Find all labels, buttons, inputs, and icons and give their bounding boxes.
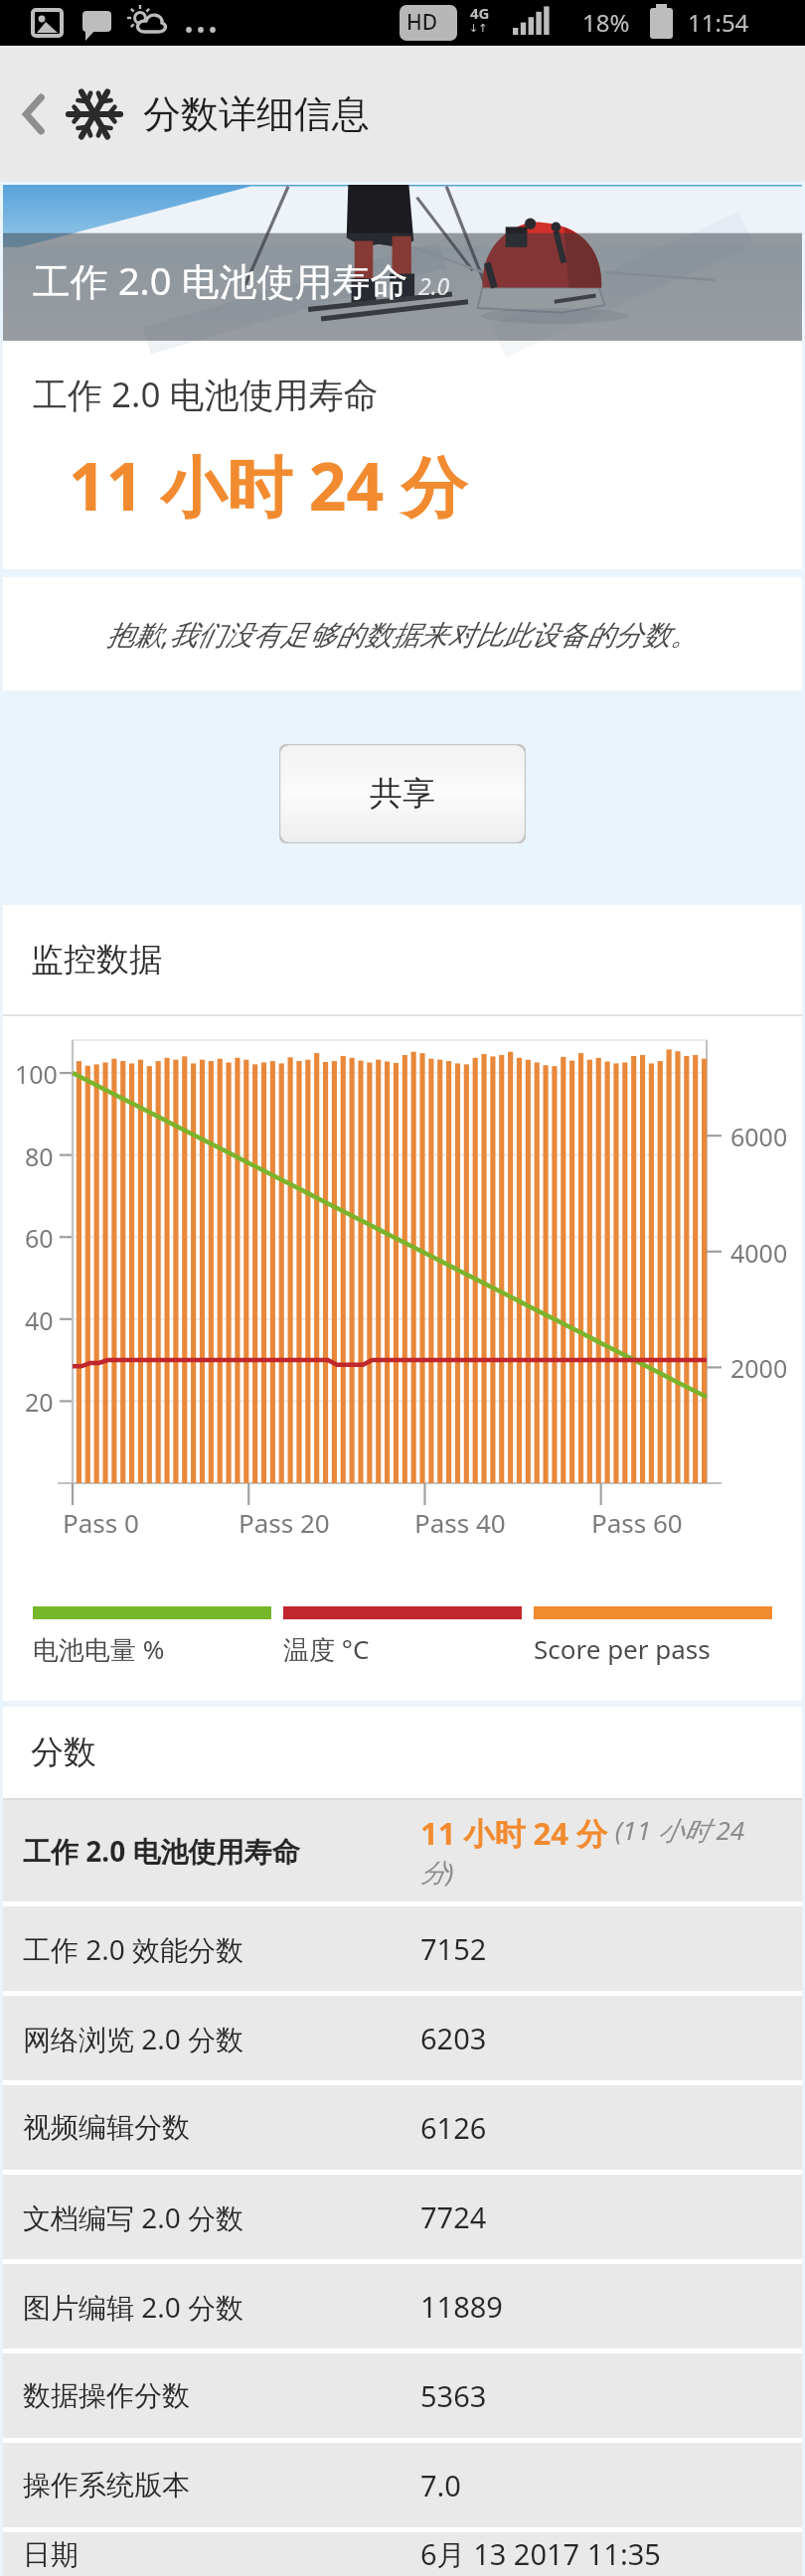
staticText: 共享 xyxy=(370,773,435,815)
staticText: 11 小时 24 分 xyxy=(69,440,467,530)
staticText: 6月 13 2017 11:35 xyxy=(420,2534,661,2574)
staticText: 11:54 xyxy=(688,6,749,39)
button[interactable]: 视频编辑分数 xyxy=(3,2085,802,2170)
staticText: 工作 2.0 电池使用寿命 xyxy=(23,1832,420,1870)
staticText: 工作 2.0 电池使用寿命 xyxy=(33,371,379,418)
staticText: 6000 xyxy=(730,1120,788,1153)
staticText: 分数 xyxy=(31,1732,96,1773)
staticText: 监控数据 xyxy=(31,939,162,981)
button[interactable]: 操作系统版本 xyxy=(3,2443,802,2527)
staticText: 7152 xyxy=(420,1929,487,1968)
staticText: 电池电量 % xyxy=(33,1631,165,1667)
staticText: Pass 20 xyxy=(239,1505,330,1540)
staticText: 60 xyxy=(25,1221,54,1255)
button[interactable]: 图片编辑 2.0 分数 xyxy=(3,2264,802,2349)
button[interactable]: 文档编写 2.0 分数 xyxy=(3,2175,802,2259)
staticText: 2.0 xyxy=(418,270,450,301)
staticText: 抱歉,我们没有足够的数据来对比此设备的分数。 xyxy=(106,615,699,653)
staticText: ↓↑ xyxy=(469,22,488,35)
staticText: 温度 °C xyxy=(283,1631,370,1667)
staticText: 4G xyxy=(470,3,490,23)
staticText: (11 小时 24 xyxy=(608,1812,745,1848)
button[interactable]: 工作 2.0 电池使用寿命 xyxy=(3,1800,802,1901)
staticText: 11 小时 24 分 xyxy=(420,1812,608,1854)
staticText: 6126 xyxy=(420,2108,487,2147)
staticText: Score per pass xyxy=(534,1631,711,1666)
staticText: 视频编辑分数 xyxy=(23,2110,420,2145)
staticText: 80 xyxy=(25,1139,54,1173)
staticText: 分) xyxy=(420,1854,454,1890)
staticText: 网络浏览 2.0 分数 xyxy=(23,2020,420,2057)
staticText: 11889 xyxy=(420,2287,503,2326)
button[interactable]: 工作 2.0 效能分数 xyxy=(3,1906,802,1991)
staticText: 6203 xyxy=(420,2019,487,2057)
staticText: 工作 2.0 电池使用寿命 xyxy=(33,254,408,306)
staticText: 分数详细信息 xyxy=(143,90,370,138)
staticText: 文档编写 2.0 分数 xyxy=(23,2198,420,2236)
staticText: 操作系统版本 xyxy=(23,2468,420,2502)
staticText: 数据操作分数 xyxy=(23,2378,420,2413)
staticText: Pass 40 xyxy=(414,1505,506,1540)
staticText: Pass 0 xyxy=(63,1505,139,1540)
button[interactable]: Back xyxy=(4,65,66,164)
staticText: 18% xyxy=(582,6,630,39)
staticText: 图片编辑 2.0 分数 xyxy=(23,2288,420,2326)
button[interactable]: 共享 xyxy=(279,744,526,843)
staticText: 5363 xyxy=(420,2376,487,2415)
staticText: 日期 xyxy=(23,2537,420,2572)
other: PCMark xyxy=(66,85,123,143)
staticText: 20 xyxy=(25,1385,54,1419)
staticText: HD xyxy=(406,8,438,37)
staticText: 40 xyxy=(25,1303,54,1337)
button[interactable]: 日期 xyxy=(3,2532,802,2576)
staticText: 100 xyxy=(15,1057,58,1091)
staticText: 7.0 xyxy=(420,2466,461,2504)
staticText: Pass 60 xyxy=(591,1505,683,1540)
staticText: 2000 xyxy=(730,1351,788,1385)
staticText: 4000 xyxy=(730,1236,788,1270)
button[interactable]: 网络浏览 2.0 分数 xyxy=(3,1996,802,2080)
button[interactable]: 数据操作分数 xyxy=(3,2353,802,2438)
staticText: 7724 xyxy=(420,2197,487,2236)
staticText: 工作 2.0 效能分数 xyxy=(23,1930,420,1968)
